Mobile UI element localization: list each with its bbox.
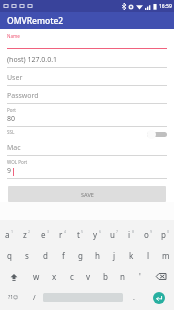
staticText: 3 (47, 229, 50, 234)
button[interactable]: f (54, 245, 72, 266)
staticText: SAVE (81, 191, 94, 198)
button[interactable]: a (0, 224, 18, 245)
button[interactable]: Enter (144, 287, 174, 308)
staticText: n (120, 271, 125, 282)
staticText: 7 (116, 229, 119, 234)
staticText: WOL Port (7, 159, 28, 165)
staticText: t (77, 229, 80, 240)
staticText: s (25, 250, 29, 261)
staticText: e (41, 229, 46, 240)
staticText: 80 (7, 114, 16, 124)
button[interactable]: Symbols (0, 287, 26, 308)
staticText: 1 (11, 229, 14, 234)
staticText: Name (7, 33, 20, 39)
button[interactable]: Name (7, 29, 167, 49)
staticText: m (162, 250, 170, 261)
staticText: Mac (7, 143, 21, 153)
staticText: q (7, 250, 12, 261)
staticText: a (5, 229, 10, 240)
staticText: 9 (7, 166, 12, 176)
staticText: d (43, 250, 48, 261)
staticText: o (144, 229, 149, 240)
staticText: y (93, 229, 98, 240)
button[interactable]: y (89, 224, 106, 245)
button[interactable]: h (89, 245, 106, 266)
staticText: 8 (132, 229, 135, 234)
staticText: Port (7, 107, 16, 113)
staticText: w (33, 271, 40, 282)
button[interactable]: c (63, 266, 80, 287)
button[interactable]: p (157, 224, 174, 245)
staticText: 16:59 (159, 3, 172, 10)
staticText: 9 (150, 229, 153, 234)
button[interactable]: Backspace (148, 266, 174, 287)
button[interactable]: User (7, 68, 167, 86)
button[interactable]: / (26, 287, 42, 308)
staticText: OMVRemote2 (7, 15, 64, 27)
staticText: User (7, 73, 23, 83)
staticText: 4 (64, 229, 67, 234)
staticText: Password (7, 91, 39, 101)
button[interactable]: e (36, 224, 54, 245)
staticText: 0 (167, 229, 170, 234)
button[interactable]: d (36, 245, 54, 266)
button[interactable]: l (140, 245, 157, 266)
staticText: j (113, 250, 116, 261)
button[interactable]: u (106, 224, 123, 245)
button[interactable]: Shift (0, 266, 27, 287)
button[interactable]: v (80, 266, 97, 287)
staticText: . (133, 293, 135, 303)
staticText: v (86, 271, 91, 282)
button[interactable]: i (123, 224, 140, 245)
staticText: 2 (28, 229, 31, 234)
button[interactable]: Password (7, 86, 167, 104)
button[interactable]: w (27, 266, 45, 287)
button[interactable]: r (54, 224, 72, 245)
staticText: r (59, 229, 63, 240)
button[interactable]: z (18, 224, 36, 245)
staticText: g (78, 250, 83, 261)
button[interactable]: k (123, 245, 140, 266)
button[interactable]: j (106, 245, 123, 266)
button[interactable]: WOL Port (7, 156, 167, 179)
staticText: i (128, 229, 131, 240)
staticText: k (129, 250, 134, 261)
staticText: ' (139, 271, 141, 282)
button[interactable]: SSL toggle (147, 129, 167, 139)
button[interactable]: (host) 127.0.0.1 (7, 49, 167, 68)
button[interactable]: SAVE (8, 186, 166, 202)
staticText: b (103, 271, 108, 282)
button[interactable]: Mac (7, 141, 167, 156)
staticText: / (33, 293, 36, 303)
button[interactable]: ' (131, 266, 148, 287)
staticText: f (62, 250, 65, 261)
button[interactable]: g (72, 245, 89, 266)
button[interactable]: b (97, 266, 114, 287)
staticText: (host) 127.0.0.1 (7, 55, 58, 65)
staticText: z (23, 229, 27, 240)
staticText: 5 (81, 229, 84, 234)
button[interactable]: s (18, 245, 36, 266)
staticText: p (161, 229, 166, 240)
button[interactable]: x (45, 266, 63, 287)
staticText: SSL (7, 129, 15, 135)
staticText: u (110, 229, 115, 240)
button[interactable]: n (114, 266, 131, 287)
staticText: c (70, 271, 74, 282)
button[interactable]: t (72, 224, 89, 245)
button[interactable]: m (157, 245, 174, 266)
staticText: h (95, 250, 100, 261)
button[interactable]: q (0, 245, 18, 266)
button[interactable]: SSL (7, 127, 167, 141)
staticText: 6 (99, 229, 102, 234)
staticText: x (52, 271, 57, 282)
staticText: ?1☺ (8, 294, 19, 301)
button[interactable]: Port (7, 104, 167, 127)
button[interactable]: o (140, 224, 157, 245)
button[interactable]: . (124, 287, 144, 308)
staticText: l (147, 250, 150, 261)
